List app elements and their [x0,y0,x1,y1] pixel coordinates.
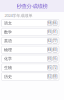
button[interactable]: 数学 [1,28,59,36]
staticText: 77 [53,39,57,43]
staticText: 数学 [4,30,12,34]
staticText: 85 [48,66,52,69]
staticText: 2024学年成绩单 [4,13,32,18]
staticText: 英语 [4,38,12,43]
staticText: 95 [53,57,57,60]
button[interactable]: 物理 [1,46,59,54]
button[interactable]: 语文 [1,19,59,27]
staticText: 历史 [4,74,12,79]
staticText: 95 [48,30,52,34]
staticText: 82 [48,75,52,78]
staticText: 生物 [4,65,12,70]
button[interactable]: 生物 [1,64,59,71]
staticText: 88 [53,75,57,78]
staticText: 化学 [4,56,12,61]
staticText: 秒查分·成绩榜 [16,2,47,10]
staticText: 90 [48,57,52,60]
staticText: 72 [53,66,57,69]
staticText: 83 [53,48,57,52]
staticText: 88 [48,48,52,52]
button[interactable]: 历史 [1,73,59,80]
staticText: 语文 [4,21,12,26]
staticText: 98 [48,21,52,25]
staticText: 物理 [4,47,12,52]
staticText: 86 [53,21,57,25]
button[interactable]: 化学 [1,55,59,62]
button[interactable]: 英语 [1,37,59,45]
staticText: 92 [48,39,52,43]
staticText: 91 [53,30,57,34]
